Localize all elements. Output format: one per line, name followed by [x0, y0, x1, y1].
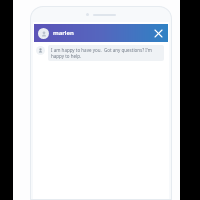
button[interactable]: I am happy to have you. Got any question… — [48, 45, 164, 61]
staticText: I am happy to have you. Got any question… — [51, 47, 161, 59]
staticText: marlen — [53, 29, 74, 37]
button[interactable]: marlen — [34, 24, 168, 42]
button[interactable]: Close chat — [152, 27, 164, 39]
